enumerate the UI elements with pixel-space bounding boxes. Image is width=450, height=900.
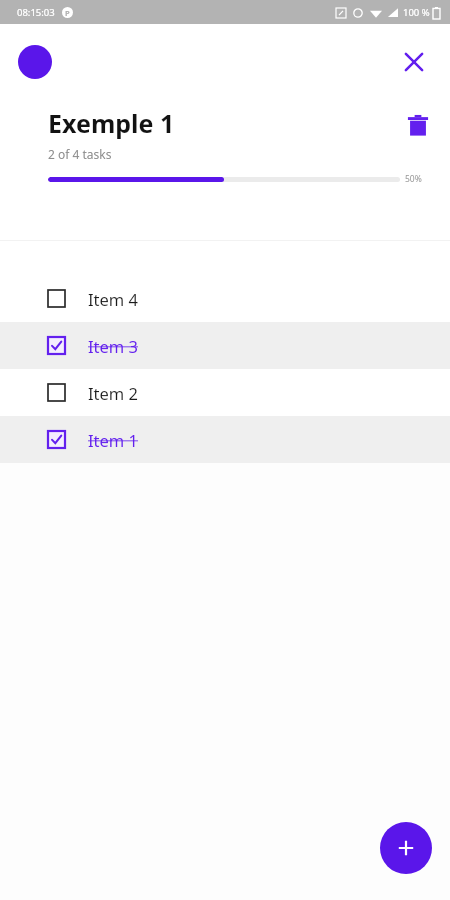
staticText: Item 2: [88, 382, 139, 404]
staticText: 08:15:03: [17, 6, 55, 19]
staticText: Item 3: [88, 335, 139, 357]
button[interactable]: Item 4: [0, 275, 450, 322]
button[interactable]: Item 3: [0, 322, 450, 369]
staticText: Item 1: [88, 429, 139, 451]
staticText: Item 4: [88, 288, 139, 310]
button[interactable]: Profile: [18, 45, 52, 79]
button[interactable]: Item 2: [0, 369, 450, 416]
button[interactable]: Delete list: [396, 104, 440, 148]
button[interactable]: Item 1: [0, 416, 450, 463]
staticText: 100 %: [403, 6, 430, 19]
button[interactable]: Close: [392, 40, 436, 84]
staticText: 2 of 4 tasks: [48, 146, 112, 162]
staticText: Exemple 1: [48, 106, 175, 140]
staticText: 50%: [405, 173, 422, 185]
button[interactable]: Add task: [380, 822, 432, 874]
staticText: P: [65, 8, 70, 18]
